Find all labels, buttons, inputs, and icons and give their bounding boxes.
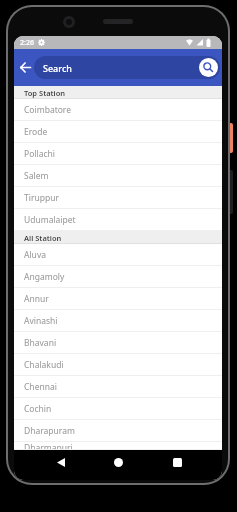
button[interactable]: Annur [14, 288, 222, 310]
staticText: All Station [24, 233, 62, 243]
staticText: Dharmapuri [24, 442, 73, 450]
staticText: Search [43, 62, 72, 74]
button[interactable]: Search [34, 56, 220, 79]
staticText: Aluva [24, 249, 46, 261]
button[interactable] [199, 58, 218, 77]
button[interactable]: Pollachi [14, 143, 222, 165]
staticText: Chennai [24, 381, 57, 393]
staticText: Udumalaipet [24, 214, 76, 226]
button[interactable]: Salem [14, 165, 222, 187]
button[interactable]: Erode [14, 121, 222, 143]
staticText: Chalakudi [24, 359, 64, 371]
button[interactable]: Chennai [14, 376, 222, 398]
staticText: Avinashi [24, 315, 58, 327]
staticText: Erode [24, 126, 48, 138]
button[interactable]: Dharapuram [14, 420, 222, 442]
button[interactable]: Angamoly [14, 266, 222, 288]
button[interactable]: Tiruppur [14, 187, 222, 209]
button[interactable]: Chalakudi [14, 354, 222, 376]
staticText: Dharapuram [24, 425, 75, 437]
button[interactable] [16, 58, 34, 77]
button[interactable] [54, 455, 68, 469]
button[interactable]: Bhavani [14, 332, 222, 354]
staticText: Annur [24, 293, 49, 305]
button[interactable]: Avinashi [14, 310, 222, 332]
button[interactable]: Coimbatore [14, 99, 222, 121]
button[interactable]: Aluva [14, 244, 222, 266]
button[interactable]: Udumalaipet [14, 209, 222, 231]
button[interactable] [111, 455, 125, 469]
button[interactable] [170, 455, 184, 469]
staticText: Salem [24, 170, 49, 182]
staticText: 2:26 [20, 38, 34, 48]
staticText: Pollachi [24, 148, 55, 160]
staticText: Bhavani [24, 337, 57, 349]
button[interactable]: Cochin [14, 398, 222, 420]
staticText: Coimbatore [24, 104, 71, 116]
staticText: Tiruppur [24, 192, 59, 204]
staticText: Angamoly [24, 271, 65, 283]
staticText: Top Station [24, 88, 66, 98]
button[interactable]: Dharmapuri [14, 442, 222, 450]
staticText: Cochin [24, 403, 52, 415]
